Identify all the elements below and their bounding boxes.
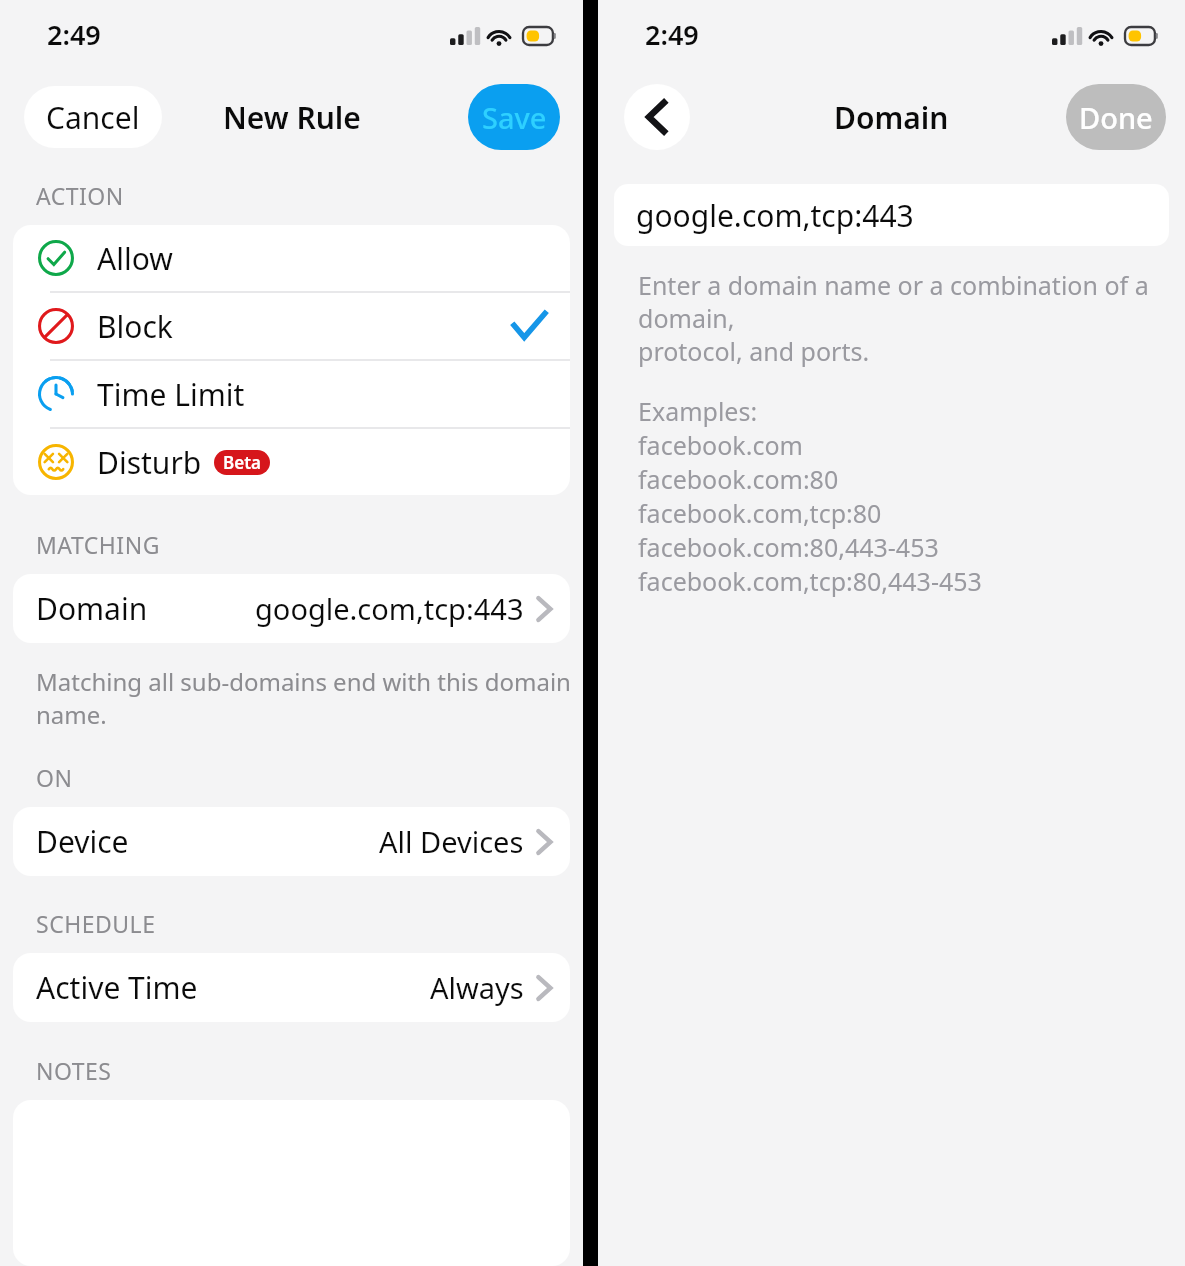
staticText: Block [97,306,173,347]
staticText: Domain [36,588,148,629]
staticText: 2:49 [47,16,101,53]
staticText: google.com,tcp:443 [636,195,914,236]
button[interactable]: Disturb [13,429,570,495]
staticText: SCHEDULE [36,908,156,939]
staticText: Domain [834,97,949,138]
staticText: Done [1079,98,1153,137]
button[interactable]: Cancel [24,86,162,148]
staticText: Cancel [46,97,140,138]
staticText: Beta [223,451,261,474]
staticText: google.com,tcp:443 [255,589,524,628]
button[interactable]: Time Limit [13,361,570,427]
staticText: Allow [97,238,173,279]
button[interactable]: Allow [13,225,570,291]
button[interactable]: Done [1066,84,1166,150]
staticText: Time Limit [97,374,245,415]
staticText: Disturb [97,442,202,483]
button[interactable]: google.com,tcp:443 [614,184,1169,246]
staticText: Device [36,821,129,862]
button[interactable]: Domain [13,574,570,643]
staticText: Matching all sub-domains end with this d… [36,665,583,731]
staticText: NOTES [36,1055,112,1086]
staticText: 2:49 [645,16,699,53]
staticText: Always [430,968,524,1007]
staticText: Examples: facebook.com facebook.com:80 f… [638,394,982,598]
staticText: New Rule [223,97,361,138]
staticText: ON [36,762,73,793]
button[interactable]: Back [624,84,690,150]
staticText: Save [482,98,547,137]
staticText: Enter a domain name or a combination of … [638,268,1185,368]
staticText: All Devices [379,822,524,861]
button[interactable]: Save [468,84,560,150]
staticText: Active Time [36,967,198,1008]
button[interactable]: Block [13,293,570,359]
staticText: MATCHING [36,529,160,560]
staticText: ACTION [36,180,124,211]
button[interactable]: Active Time [13,953,570,1022]
button[interactable]: Device [13,807,570,876]
